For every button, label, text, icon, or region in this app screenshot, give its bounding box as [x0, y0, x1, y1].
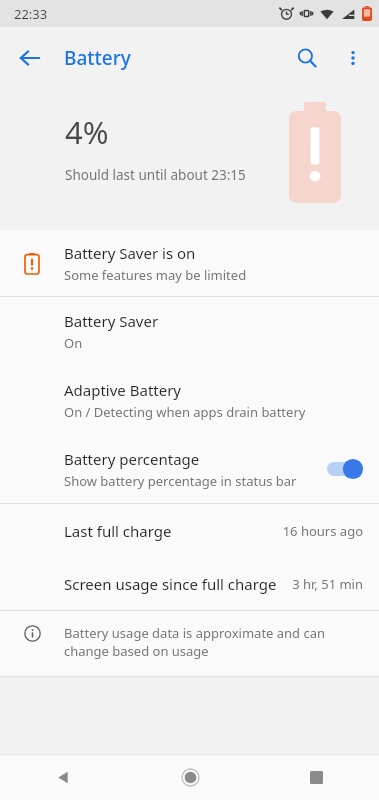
staticText: Some features may be limited: [64, 266, 247, 284]
staticText: Battery Saver is on: [64, 243, 196, 263]
button[interactable]: Home: [127, 755, 253, 800]
staticText: Battery: [64, 45, 131, 71]
staticText: On: [64, 334, 83, 352]
staticText: 16 hours ago: [282, 522, 363, 540]
button[interactable]: Screen usage since full charge: [0, 557, 379, 610]
staticText: Battery usage data is approximate and ca…: [64, 624, 349, 660]
button[interactable]: Adaptive Battery: [0, 366, 379, 435]
staticText: 4%: [65, 111, 109, 153]
staticText: Screen usage since full charge: [64, 574, 292, 594]
staticText: 3 hr, 51 min: [292, 575, 363, 593]
button[interactable]: Battery Saver is on: [0, 230, 379, 296]
staticText: Last full charge: [64, 521, 282, 541]
button[interactable]: Battery Saver: [0, 297, 379, 366]
button[interactable]: Back: [0, 755, 127, 800]
staticText: Battery percentage: [64, 449, 200, 469]
staticText: On / Detecting when apps drain battery: [64, 403, 306, 421]
button[interactable]: Last full charge: [0, 504, 379, 557]
staticText: Battery Saver: [64, 311, 159, 331]
staticText: Adaptive Battery: [64, 380, 182, 400]
button[interactable]: Search: [283, 34, 331, 82]
button[interactable]: More options: [331, 36, 375, 80]
button[interactable]: Recent apps: [253, 755, 379, 800]
button[interactable]: Battery percentage: [0, 435, 379, 503]
staticText: Show battery percentage in status bar: [64, 472, 297, 490]
button[interactable]: Back: [6, 34, 54, 82]
staticText: Should last until about 23:15: [65, 166, 246, 184]
staticText: 22:33: [14, 5, 48, 23]
